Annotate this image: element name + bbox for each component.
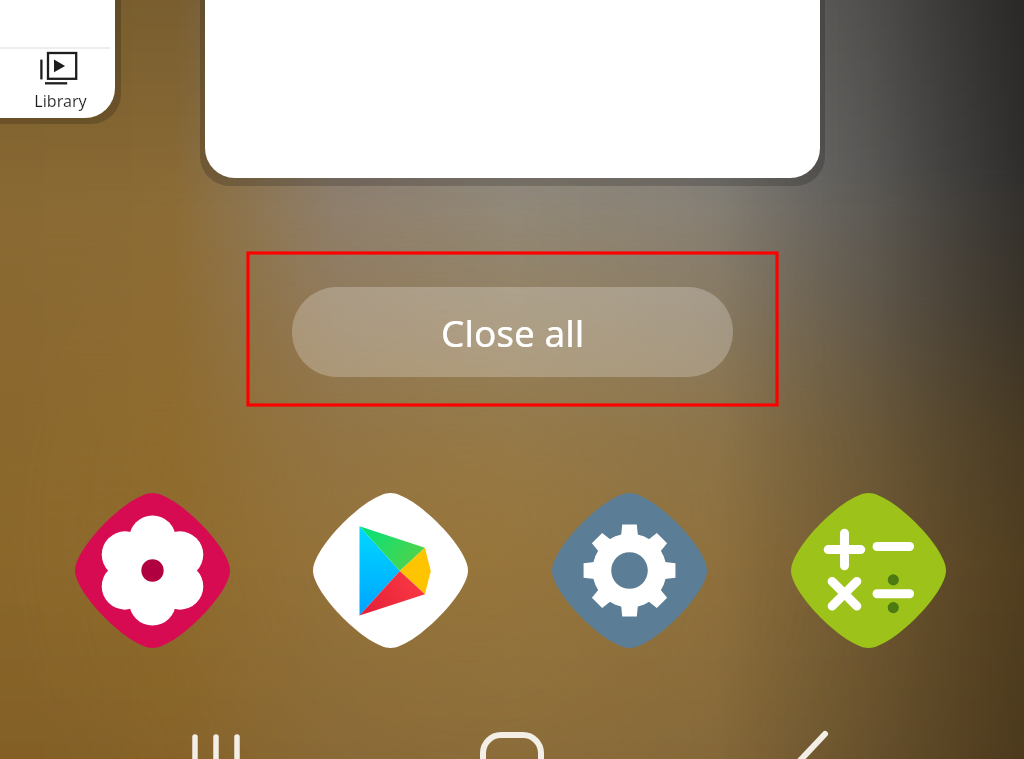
staticText: Close all [441,307,585,357]
staticText: Library [34,90,87,112]
button[interactable]: Gallery [75,493,230,648]
button[interactable]: Library [16,50,104,112]
button[interactable]: Play Store [313,493,468,648]
button[interactable]: Calculator [791,493,946,648]
button[interactable]: Close all [292,287,733,377]
button[interactable]: Recents [166,722,266,759]
button[interactable]: Home [462,722,562,759]
button[interactable]: Back [755,722,855,759]
button[interactable]: Settings [552,493,707,648]
